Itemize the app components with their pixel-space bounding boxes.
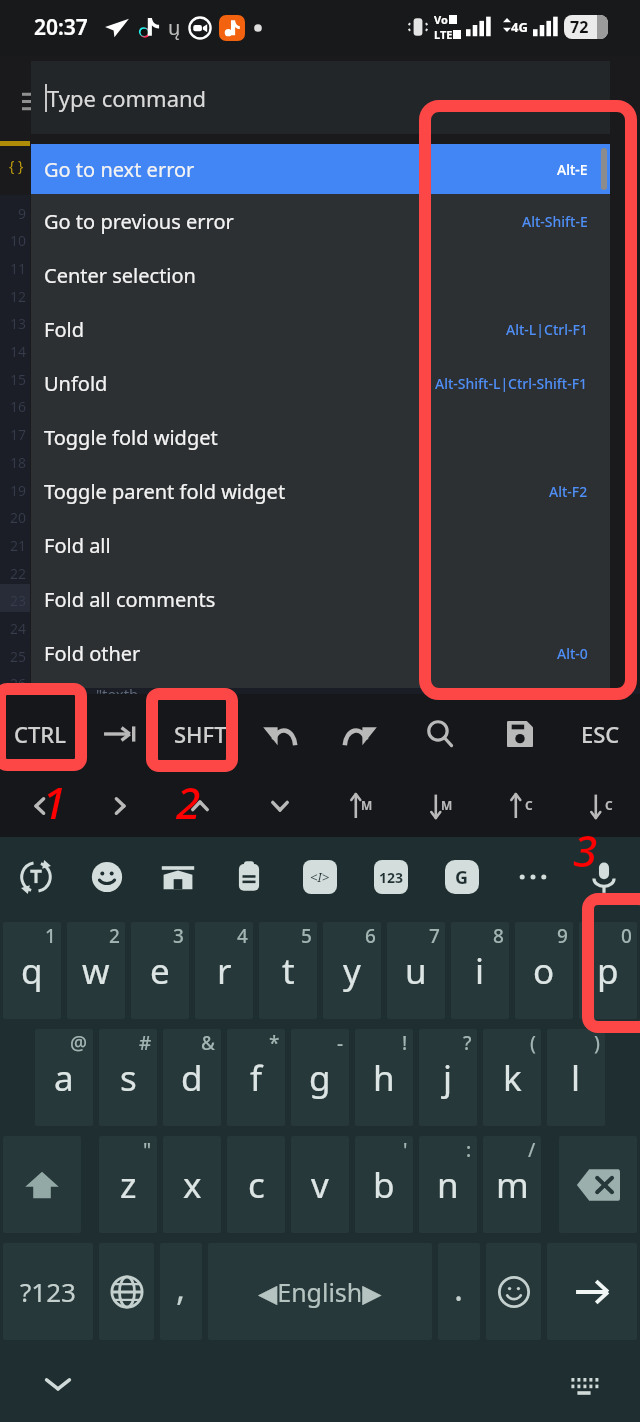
staticText: Unfold — [44, 370, 108, 397]
button[interactable]: s — [99, 1029, 157, 1126]
button[interactable]: GT — [80, 773, 160, 838]
button[interactable]: u — [387, 922, 445, 1019]
button[interactable]: , — [160, 1243, 202, 1340]
staticText: 21 — [10, 536, 27, 555]
button[interactable]: . — [438, 1243, 480, 1340]
button[interactable]: BACK — [559, 1136, 637, 1233]
staticText: w — [82, 947, 110, 995]
button[interactable]: TAB — [80, 694, 160, 773]
button[interactable]: SMILE — [79, 849, 135, 905]
button[interactable]: Toggle fold widget — [31, 410, 610, 464]
staticText: f — [250, 1054, 263, 1102]
button[interactable]: r — [195, 922, 253, 1019]
button[interactable]: FIND — [400, 694, 480, 773]
button[interactable]: 123 — [363, 849, 419, 905]
button[interactable]: DOWN — [240, 773, 320, 838]
button[interactable]: SAVE — [480, 694, 560, 773]
button[interactable]: Keyboard — [564, 1364, 604, 1404]
button[interactable]: UNDO — [240, 694, 320, 773]
staticText: Go to previous error — [44, 208, 234, 235]
button[interactable]: CTRL — [0, 694, 80, 773]
button[interactable]: l — [547, 1029, 605, 1126]
button[interactable]: h — [355, 1029, 413, 1126]
staticText: 14 — [10, 342, 27, 361]
button[interactable]: DOWNC — [560, 773, 640, 838]
button[interactable]: c — [227, 1136, 285, 1233]
staticText: 72 — [570, 16, 589, 38]
button[interactable]: e — [131, 922, 189, 1019]
button[interactable]: REDO — [320, 694, 400, 773]
button[interactable]: m — [483, 1136, 541, 1233]
button[interactable]: f — [227, 1029, 285, 1126]
staticText: Fold all comments — [44, 586, 216, 613]
button[interactable]: z — [99, 1136, 157, 1233]
button[interactable]: o — [515, 922, 573, 1019]
button[interactable]: Go to next error — [31, 144, 610, 194]
staticText: ( — [530, 1030, 536, 1056]
button[interactable]: CODE — [292, 849, 348, 905]
staticText: 4 — [237, 923, 248, 949]
button[interactable]: p — [579, 922, 637, 1019]
staticText: 0 — [621, 923, 632, 949]
button[interactable]: LT — [0, 773, 80, 838]
button[interactable]: a — [35, 1029, 93, 1126]
button[interactable]: SHIFT — [3, 1136, 81, 1233]
button[interactable]: UP — [160, 773, 240, 838]
staticText: Alt-E — [557, 160, 588, 179]
button[interactable]: UPC — [480, 773, 560, 838]
button[interactable]: n — [419, 1136, 477, 1233]
staticText: s — [120, 1054, 137, 1102]
staticText: - — [337, 1030, 344, 1056]
staticText: 9 — [557, 923, 568, 949]
button[interactable]: j — [419, 1029, 477, 1126]
staticText: 19 — [10, 481, 27, 500]
staticText: Go to next error — [44, 156, 195, 183]
button[interactable]: G — [434, 849, 490, 905]
button[interactable]: SPACE — [208, 1243, 432, 1340]
button[interactable]: Center selection — [31, 248, 610, 302]
button[interactable]: EMOJI — [486, 1243, 541, 1340]
staticText: Alt-Shift-E — [522, 212, 588, 231]
button[interactable]: STORE — [150, 849, 206, 905]
button[interactable]: SHFT — [160, 694, 240, 773]
button[interactable]: k — [483, 1029, 541, 1126]
button[interactable]: Toggle parent fold widget — [31, 464, 610, 518]
button[interactable]: T — [8, 849, 64, 905]
button[interactable]: b — [355, 1136, 413, 1233]
button[interactable]: i — [451, 922, 509, 1019]
button[interactable]: ENTER — [547, 1243, 637, 1340]
button[interactable]: q — [3, 922, 61, 1019]
staticText: { } — [9, 156, 24, 175]
button[interactable]: DOWNM — [400, 773, 480, 838]
staticText: 6 — [365, 923, 376, 949]
staticText: SHFT — [174, 719, 227, 749]
button[interactable]: GLOBE — [99, 1243, 154, 1340]
button[interactable]: Hide keyboard — [38, 1364, 78, 1404]
button[interactable]: MIC — [576, 849, 632, 905]
button[interactable]: UPM — [320, 773, 400, 838]
button[interactable]: Fold all comments — [31, 572, 610, 626]
button[interactable]: Go to previous error — [31, 194, 610, 248]
button[interactable]: Fold other — [31, 626, 610, 680]
staticText: Toggle fold widget — [44, 424, 218, 451]
staticText: Fold — [44, 316, 84, 343]
staticText: 9 — [18, 204, 27, 223]
button[interactable]: Fold — [31, 302, 610, 356]
button[interactable]: t — [259, 922, 317, 1019]
button[interactable]: CLIP — [221, 849, 277, 905]
button[interactable]: DOTS — [505, 849, 561, 905]
staticText: 24 — [10, 619, 27, 638]
button[interactable]: ?123 — [3, 1243, 93, 1340]
staticText: M — [361, 797, 373, 813]
button[interactable]: d — [163, 1029, 221, 1126]
button[interactable]: w — [67, 922, 125, 1019]
staticText: j — [443, 1054, 453, 1102]
button[interactable]: Fold all — [31, 518, 610, 572]
button[interactable]: g — [291, 1029, 349, 1126]
button[interactable]: y — [323, 922, 381, 1019]
button[interactable]: Type command — [31, 61, 610, 134]
button[interactable]: Unfold — [31, 356, 610, 410]
button[interactable]: x — [163, 1136, 221, 1233]
button[interactable]: v — [291, 1136, 349, 1233]
button[interactable]: ESC — [560, 694, 640, 773]
